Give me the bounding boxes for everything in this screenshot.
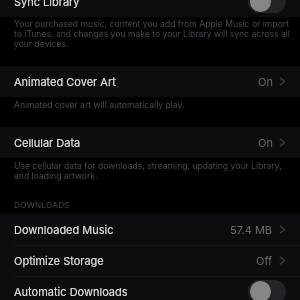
staticText: Off	[256, 254, 273, 267]
staticText: On	[258, 136, 273, 149]
staticText: Animated cover art will automatically pl…	[14, 100, 185, 110]
staticText: Your purchased music, content you add fr…	[14, 19, 292, 49]
button[interactable]: Sync Library	[0, 0, 300, 17]
staticText: Optimize Storage	[14, 254, 104, 267]
button[interactable]: Automatic Downloads	[0, 276, 300, 300]
staticText: Animated Cover Art	[14, 75, 116, 88]
button[interactable]: Cellular Data	[0, 127, 300, 158]
staticText: Sync Library	[14, 0, 80, 8]
button[interactable]: Optimize Storage	[0, 245, 300, 276]
button[interactable]: Downloaded Music	[0, 214, 300, 245]
staticText: Use cellular data for downloads, streami…	[14, 161, 292, 181]
staticText: Automatic Downloads	[14, 285, 128, 298]
button[interactable]: Automatic Downloads toggle	[248, 280, 286, 300]
staticText: 57.4 MB	[230, 223, 273, 236]
staticText: DOWNLOADS	[14, 200, 70, 210]
staticText: On	[258, 75, 273, 88]
staticText: Downloaded Music	[14, 223, 114, 236]
staticText: Cellular Data	[14, 136, 81, 149]
button[interactable]: Sync Library toggle	[248, 0, 286, 13]
button[interactable]: Animated Cover Art	[0, 66, 300, 97]
